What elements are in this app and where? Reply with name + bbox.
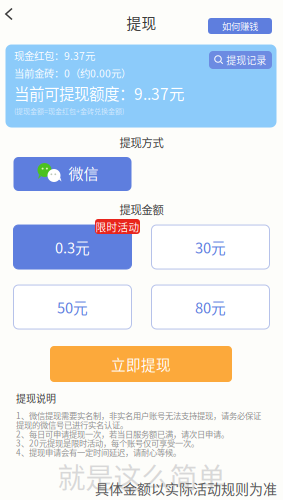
- staticText: 如何赚钱: [222, 19, 258, 33]
- staticText: 80元: [195, 296, 226, 318]
- button[interactable]: Back: [0, 1, 20, 27]
- staticText: 30元: [195, 236, 226, 258]
- staticText: 0.3元: [55, 236, 90, 258]
- staticText: 提现: [126, 12, 156, 33]
- staticText: 提现说明: [16, 391, 56, 405]
- staticText: 当前可提现额度：9..37元: [14, 82, 184, 104]
- staticText: 提现记录: [226, 53, 266, 67]
- button[interactable]: 提现记录: [209, 51, 272, 69]
- staticText: 微信: [68, 162, 98, 184]
- staticText: 提现金额: [119, 201, 163, 217]
- staticText: 现金红包：9.37元: [14, 48, 95, 63]
- staticText: 2、每日可申请提现一次，若当日服务额已满，请次日申请。: [16, 428, 229, 440]
- staticText: 提现的微信号已进行实名认证。: [16, 419, 128, 431]
- staticText: 立即提现: [111, 353, 171, 375]
- button[interactable]: 0.3元: [13, 225, 131, 269]
- staticText: 50元: [57, 296, 88, 318]
- staticText: (提现金额=现金红包+金砖兑换金额): [14, 106, 124, 116]
- button[interactable]: 微信: [13, 157, 131, 191]
- button[interactable]: 如何赚钱: [208, 18, 272, 34]
- staticText: 1、微信提现需要实名制，非实名用户账号无法支持提现，请务必保证: [16, 409, 261, 421]
- staticText: 就是这么简单: [57, 456, 225, 496]
- button[interactable]: 立即提现: [50, 346, 232, 382]
- button[interactable]: 50元: [13, 285, 131, 329]
- staticText: 3、20元提现是限时活动，每个账号仅可享受一次。: [16, 437, 199, 449]
- staticText: 具体金额以实际活动规则为准: [95, 478, 277, 498]
- staticText: 限时活动: [95, 219, 139, 234]
- staticText: 当前金砖：0（约0.00元）: [14, 66, 131, 81]
- button[interactable]: 30元: [151, 225, 269, 269]
- staticText: 提现方式: [119, 134, 163, 150]
- staticText: 4、提现申请会有一定时间延迟，请耐心等候。: [16, 446, 181, 458]
- button[interactable]: 80元: [151, 285, 269, 329]
